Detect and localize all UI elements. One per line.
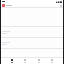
button[interactable]: Search: [23, 58, 27, 64]
button[interactable]: [1, 38, 63, 48]
button[interactable]: Library: [37, 58, 41, 64]
button[interactable]: App icon: [2, 4, 5, 7]
button[interactable]: Home: [10, 58, 14, 64]
button[interactable]: Profile: [50, 58, 54, 64]
button[interactable]: [1, 27, 63, 37]
